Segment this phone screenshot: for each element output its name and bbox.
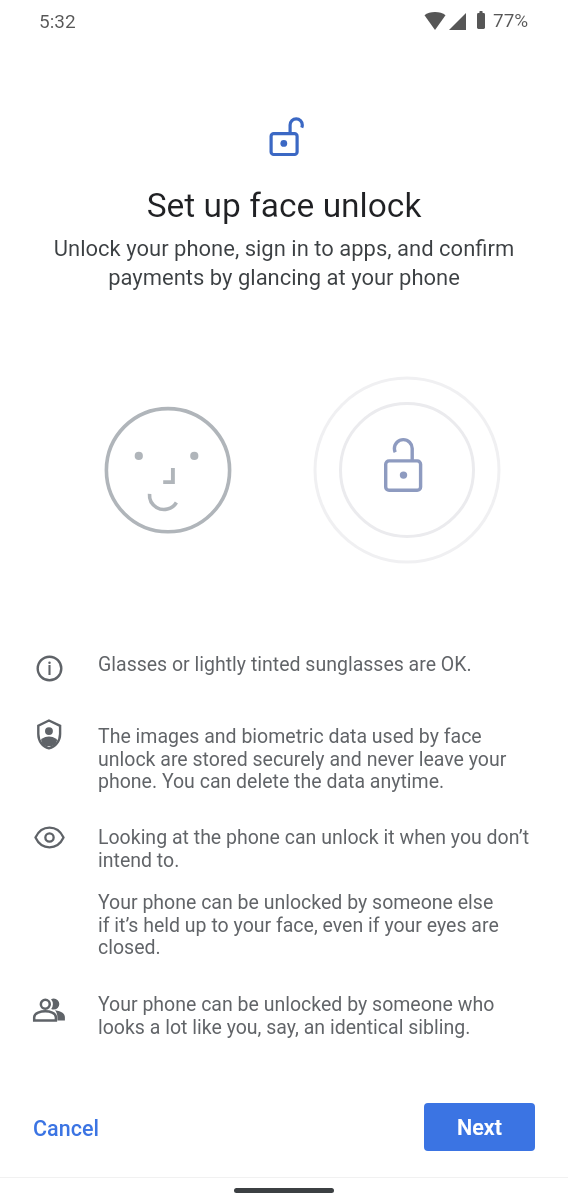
button[interactable]: Cancel <box>23 1110 109 1147</box>
other: Security <box>33 718 66 751</box>
staticText: 5:32 <box>39 10 76 32</box>
staticText: Glasses or lightly tinted sunglasses are… <box>98 653 568 676</box>
other: Attention <box>33 821 66 854</box>
other: People <box>33 994 66 1027</box>
staticText: Cancel <box>33 1116 99 1141</box>
staticText: Next <box>457 1115 502 1140</box>
staticText: Your phone can be unlocked by someone wh… <box>98 993 568 1038</box>
staticText: Set up face unlock <box>0 186 568 225</box>
staticText: Unlock your phone, sign in to apps, and … <box>0 236 568 290</box>
button[interactable]: Next <box>424 1103 535 1151</box>
staticText: The images and biometric data used by fa… <box>98 725 568 792</box>
staticText: Looking at the phone can unlock it when … <box>98 826 568 871</box>
other: Information <box>33 652 66 685</box>
staticText: Your phone can be unlocked by someone el… <box>98 891 568 958</box>
staticText: 77% <box>493 9 529 31</box>
